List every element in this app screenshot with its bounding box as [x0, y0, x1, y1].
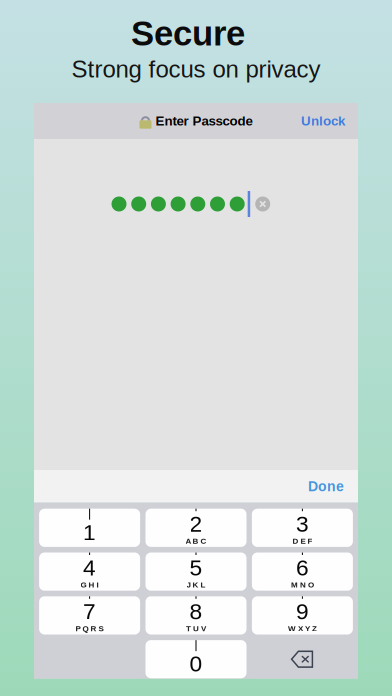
staticText: Enter Passcode	[155, 114, 252, 128]
staticText: W X Y Z	[288, 624, 317, 633]
staticText: G H I	[81, 580, 99, 589]
staticText: 0	[189, 651, 202, 676]
staticText: 5	[189, 555, 202, 580]
staticText: 4	[83, 555, 96, 580]
staticText: Strong focus on privacy	[71, 56, 320, 82]
button[interactable]: 0	[145, 640, 246, 678]
button[interactable]: 5	[145, 552, 246, 591]
staticText: J K L	[186, 580, 205, 589]
button[interactable]: Done	[308, 470, 358, 502]
staticText: M N O	[291, 580, 314, 589]
button[interactable]: 8	[145, 596, 246, 634]
staticText: D E F	[292, 536, 312, 545]
staticText: 2	[189, 511, 202, 536]
button[interactable]: Delete	[252, 640, 353, 678]
button[interactable]: 7	[39, 596, 140, 634]
button[interactable]: 9	[252, 596, 353, 634]
staticText: 8	[189, 599, 202, 624]
staticText: 1	[83, 520, 96, 545]
staticText: Secure	[131, 14, 245, 53]
button[interactable]: 6	[252, 552, 353, 591]
button[interactable]: 1	[39, 509, 140, 547]
staticText: 6	[296, 555, 309, 580]
staticText: Unlock	[301, 114, 345, 128]
staticText: T U V	[186, 624, 206, 633]
staticText: 3	[296, 511, 309, 536]
staticText: P Q R S	[76, 624, 104, 633]
staticText: Done	[308, 478, 344, 494]
button[interactable]: 2	[145, 509, 246, 547]
staticText: 7	[83, 599, 96, 624]
button[interactable]: 3	[252, 509, 353, 547]
staticText: 9	[296, 599, 309, 624]
button[interactable]: Unlock	[301, 105, 358, 137]
staticText: A B C	[185, 536, 206, 545]
button[interactable]: 4	[39, 552, 140, 591]
